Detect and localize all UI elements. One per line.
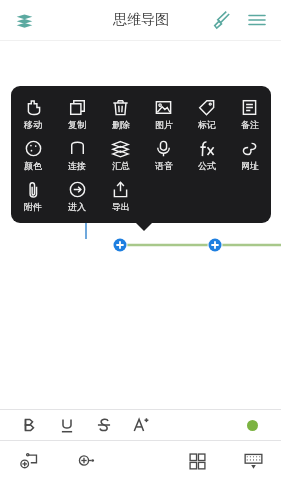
staticText: 移动: [24, 119, 42, 130]
button[interactable]: 移动: [11, 95, 55, 134]
staticText: 进入: [68, 201, 86, 212]
button[interactable]: 附件: [11, 177, 55, 216]
button[interactable]: Add child node: [0, 441, 57, 480]
button[interactable]: 标记: [185, 95, 228, 134]
button[interactable]: 网址: [228, 136, 271, 175]
button[interactable]: 图片: [142, 95, 185, 134]
staticText: 复制: [68, 119, 86, 130]
staticText: 标记: [198, 119, 216, 130]
button[interactable]: 备注: [228, 95, 271, 134]
button[interactable]: 颜色: [11, 136, 55, 175]
staticText: 导出: [112, 201, 130, 212]
staticText: 删除: [112, 119, 130, 130]
staticText: 思维导图: [113, 11, 169, 29]
button[interactable]: Layers: [8, 4, 40, 36]
staticText: 公式: [198, 160, 216, 171]
button[interactable]: [10, 410, 48, 440]
staticText: 颜色: [24, 160, 42, 171]
button[interactable]: Theme: [205, 4, 237, 36]
button[interactable]: [122, 410, 159, 440]
staticText: 网址: [241, 160, 259, 171]
staticText: 连接: [68, 160, 86, 171]
button[interactable]: Color: [234, 410, 271, 440]
button[interactable]: 进入: [55, 177, 99, 216]
staticText: 语音: [155, 160, 173, 171]
staticText: 备注: [241, 119, 259, 130]
button[interactable]: Hide keyboard: [225, 441, 281, 480]
staticText: 汇总: [112, 160, 130, 171]
button[interactable]: 导出: [99, 177, 142, 216]
button[interactable]: [85, 410, 122, 440]
button[interactable]: 语音: [142, 136, 185, 175]
button[interactable]: 删除: [99, 95, 142, 134]
button[interactable]: Layout: [169, 441, 225, 480]
button[interactable]: 连接: [55, 136, 99, 175]
button[interactable]: 汇总: [99, 136, 142, 175]
button[interactable]: [48, 410, 85, 440]
button[interactable]: 复制: [55, 95, 99, 134]
button[interactable]: Menu: [241, 4, 273, 36]
staticText: 图片: [155, 119, 173, 130]
button[interactable]: Add sibling node: [57, 441, 113, 480]
button[interactable]: 公式: [185, 136, 228, 175]
staticText: 附件: [24, 201, 42, 212]
